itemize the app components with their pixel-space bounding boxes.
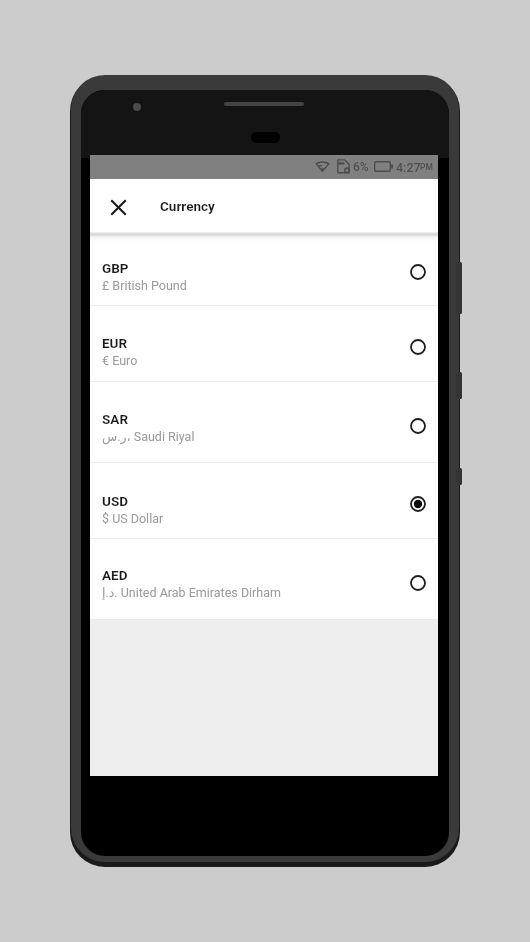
button[interactable]: Close	[101, 190, 135, 224]
button[interactable]: EUR	[90, 306, 438, 382]
staticText: $ US Dollar	[102, 511, 164, 526]
staticText: د.إ. United Arab Emirates Dirham	[102, 585, 282, 600]
staticText: GBP	[102, 260, 129, 276]
staticText: ر.س، Saudi Riyal	[102, 429, 195, 444]
staticText: Currency	[160, 198, 215, 214]
staticText: AED	[102, 567, 128, 583]
staticText: 4:27	[396, 160, 421, 175]
staticText: € Euro	[102, 353, 138, 368]
staticText: 6%	[353, 160, 369, 174]
staticText: PM	[420, 162, 433, 172]
staticText: £ British Pound	[102, 278, 187, 293]
button[interactable]: AED	[90, 539, 438, 620]
staticText: EUR	[102, 335, 128, 351]
staticText: SAR	[102, 411, 129, 427]
button[interactable]: USD	[90, 463, 438, 539]
staticText: USD	[102, 493, 128, 509]
button[interactable]: GBP	[90, 230, 438, 306]
button[interactable]: SAR	[90, 382, 438, 463]
